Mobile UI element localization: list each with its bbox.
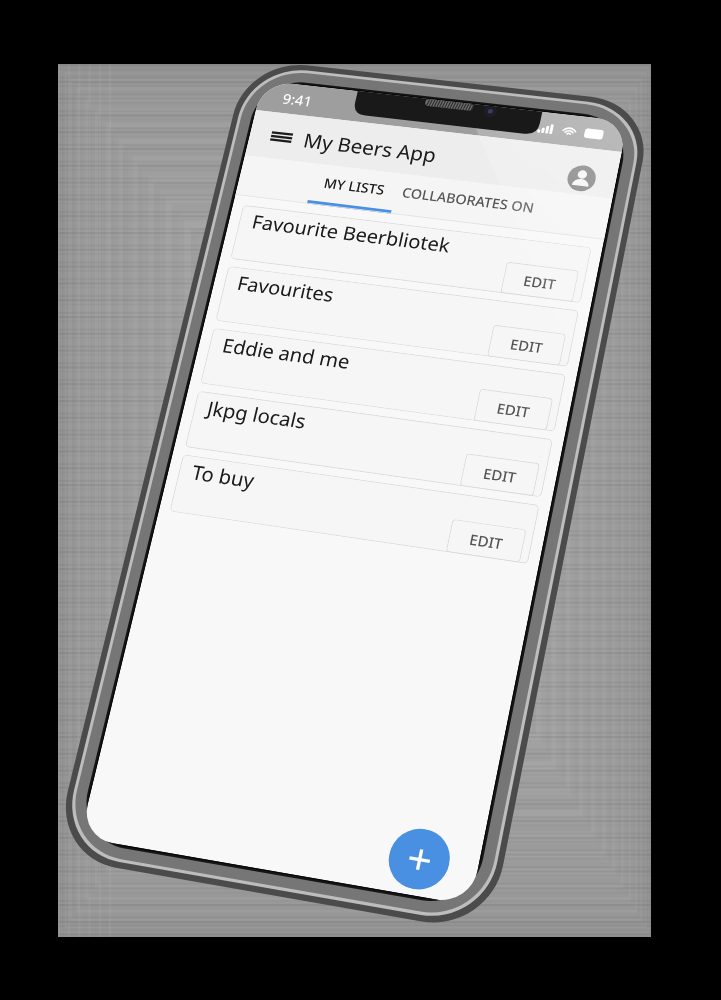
staticText: EDIT [522,271,558,293]
staticText: 9:41 [281,89,314,111]
button[interactable]: MY LISTS [307,164,400,214]
button[interactable]: Add list [383,824,455,894]
staticText: Eddie and me [220,332,353,375]
staticText: MY LISTS [322,174,387,198]
button[interactable]: EDIT [446,519,527,563]
button[interactable]: COLLABORATES ON [396,174,538,230]
staticText: Favourite Beerbliotek [249,209,453,259]
staticText: EDIT [468,529,505,553]
staticText: EDIT [495,398,532,421]
button[interactable]: Favourite Beerbliotek [230,205,592,303]
button[interactable]: EDIT [460,453,540,496]
staticText: EDIT [508,334,545,357]
button[interactable]: Eddie and me [200,328,566,432]
button[interactable]: Account [564,163,598,193]
staticText: Favourites [235,270,337,308]
button[interactable]: EDIT [487,325,566,366]
staticText: EDIT [481,463,519,487]
button[interactable]: Menu [259,117,303,156]
button[interactable]: Jkpg locals [185,391,553,497]
button[interactable]: Favourites [215,266,579,367]
staticText: My Beers App [301,126,440,168]
button[interactable]: To buy [169,454,540,564]
staticText: Jkpg locals [204,395,309,435]
button[interactable]: EDIT [500,262,579,302]
button[interactable]: EDIT [473,388,553,431]
staticText: To buy [189,459,257,494]
staticText: COLLABORATES ON [400,183,536,216]
